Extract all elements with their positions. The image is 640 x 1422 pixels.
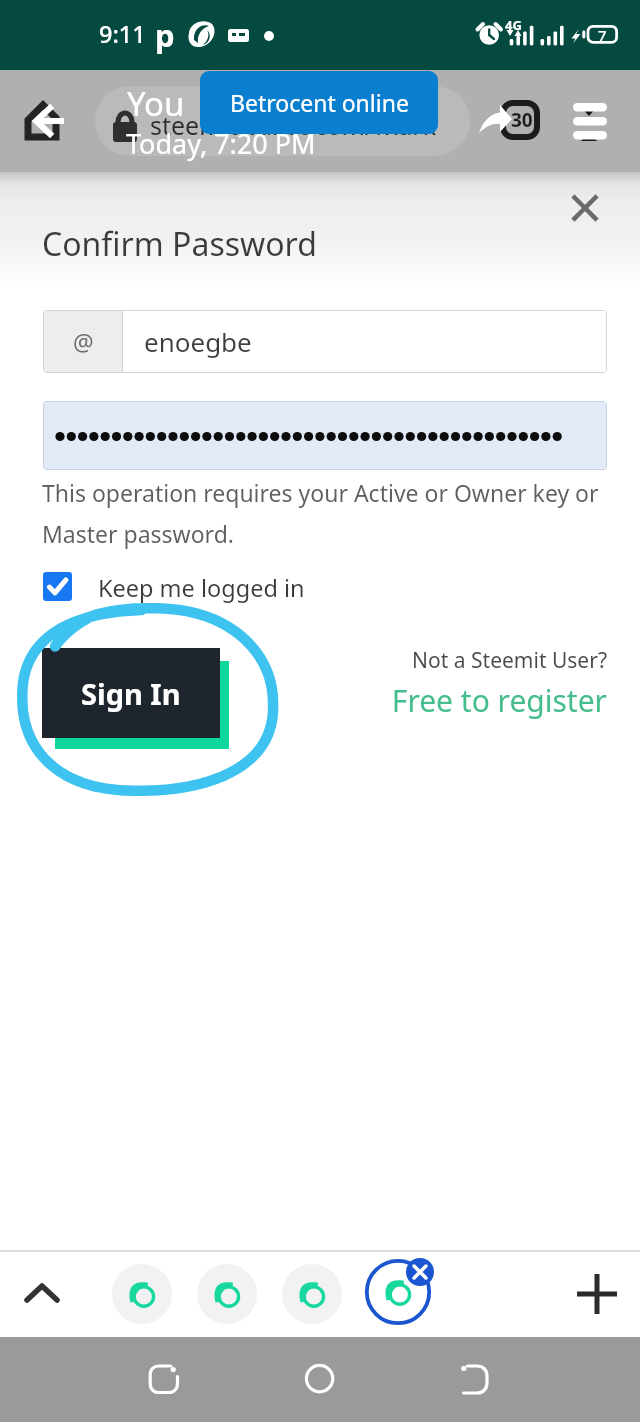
button[interactable]: Back (450, 1345, 506, 1401)
staticText: 30 (511, 107, 533, 133)
button[interactable] (44, 402, 606, 469)
staticText: Not a Steemit User? (300, 646, 607, 675)
button[interactable]: Tab (197, 1264, 257, 1324)
button[interactable]: Close tab (406, 1258, 434, 1286)
button[interactable]: Menu (563, 94, 617, 148)
button[interactable]: Home (292, 1345, 348, 1401)
staticText: 4G (505, 16, 522, 34)
button[interactable]: Betrocent online (200, 71, 438, 134)
staticText: Today, 7:20 PM (126, 125, 316, 162)
button[interactable]: Keep me logged in (43, 568, 305, 604)
button[interactable]: Sign In (42, 648, 220, 738)
staticText: enoegbe (144, 324, 252, 359)
button[interactable]: New tab (573, 1270, 621, 1318)
staticText: 9:11 (99, 18, 146, 50)
button[interactable]: Tab (112, 1264, 172, 1324)
button[interactable]: Share (475, 98, 517, 140)
button[interactable]: Expand tabs (19, 1270, 65, 1316)
staticText: Master password. (42, 518, 234, 549)
staticText: 7 (598, 25, 607, 45)
button[interactable]: Recents (136, 1345, 192, 1401)
staticText: @ (73, 326, 94, 357)
button[interactable]: Back to home (14, 96, 74, 156)
staticText: You (127, 81, 185, 126)
staticText: Keep me logged in (98, 572, 305, 604)
staticText: p (155, 14, 175, 56)
staticText: Betrocent online (230, 87, 409, 118)
button[interactable]: Close (561, 184, 609, 232)
button[interactable]: Current tab (366, 1260, 430, 1324)
staticText: Sign In (81, 674, 181, 713)
staticText: This operation requires your Active or O… (42, 477, 599, 508)
staticText: Confirm Password (42, 222, 317, 266)
button[interactable]: Address bar (95, 86, 470, 156)
staticText: steemitwallet.com/?xark (150, 108, 437, 142)
staticText: Free to register (300, 680, 607, 721)
button[interactable]: Tab count (500, 100, 540, 140)
button[interactable]: Free to register (300, 680, 607, 721)
button[interactable]: Tab (282, 1264, 342, 1324)
button[interactable]: @ (44, 311, 606, 372)
